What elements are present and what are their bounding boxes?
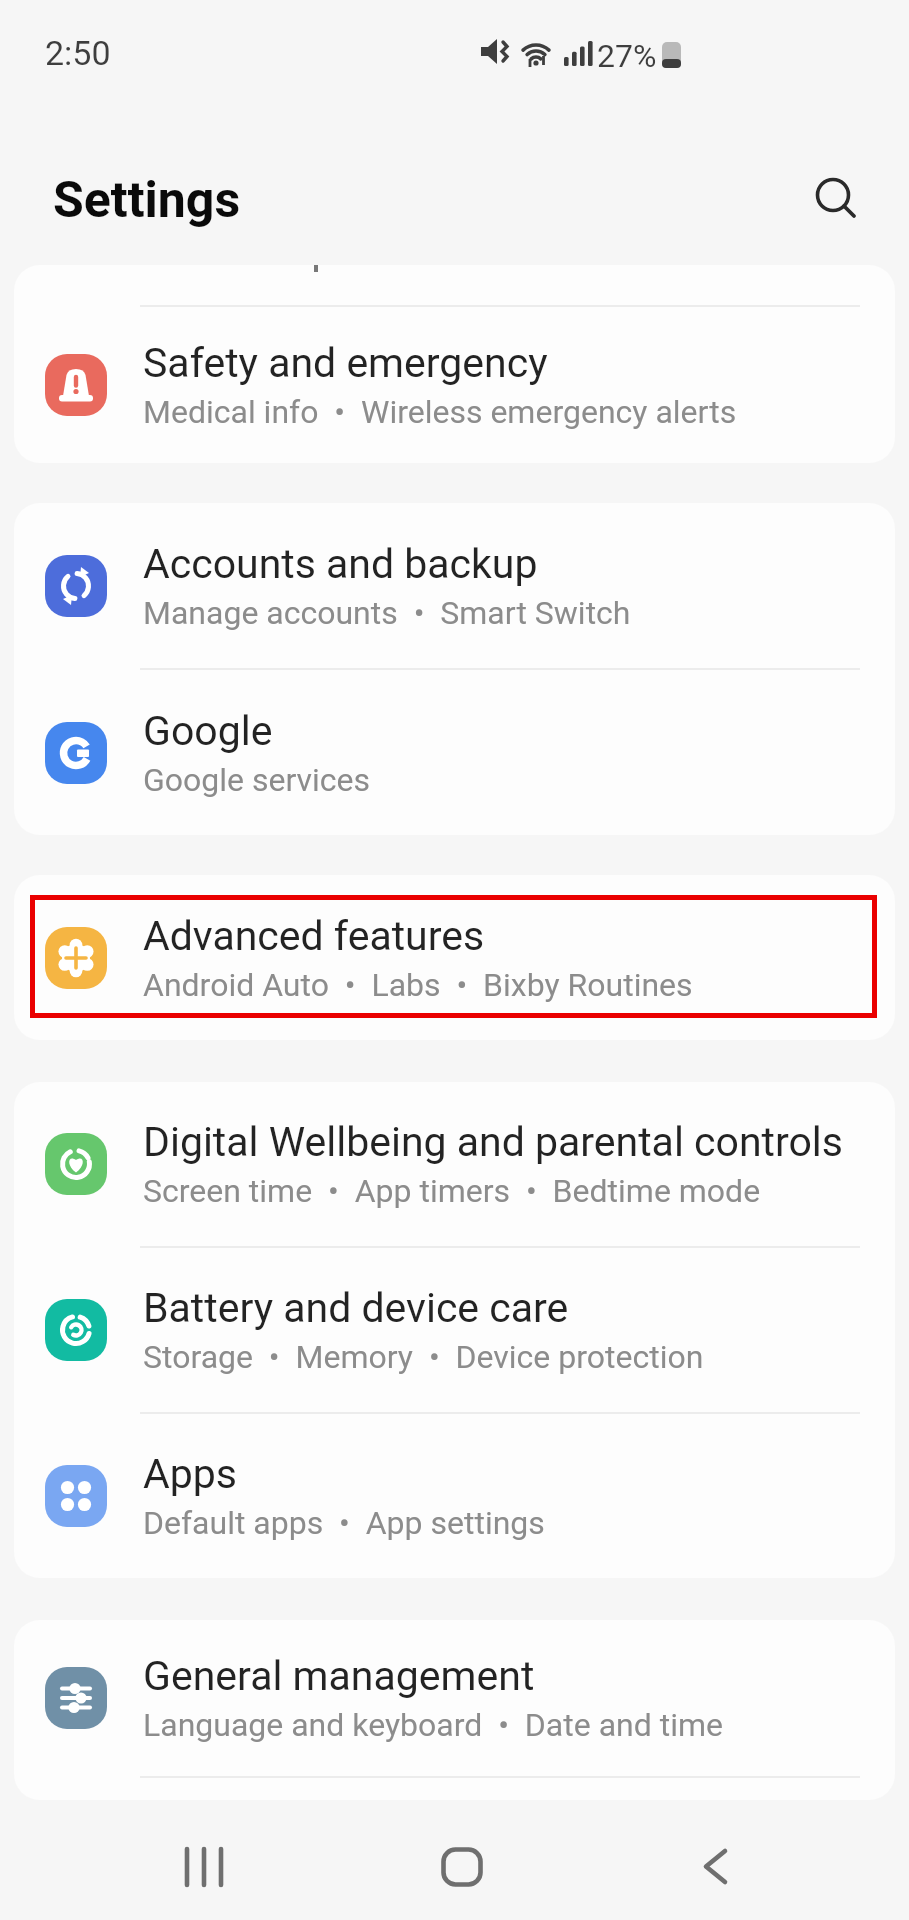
staticText: Apps bbox=[143, 1450, 237, 1498]
staticText: 2:50 bbox=[45, 33, 111, 73]
button[interactable] bbox=[699, 1849, 735, 1885]
button[interactable] bbox=[812, 174, 862, 224]
staticText: Accounts and backup bbox=[143, 540, 538, 588]
button[interactable]: Digital Wellbeing and parental controls bbox=[14, 1082, 895, 1246]
staticText: Default apps • App settings bbox=[143, 1504, 545, 1542]
staticText: Manage accounts • Smart Switch bbox=[143, 594, 631, 632]
button[interactable]: General management bbox=[14, 1620, 895, 1776]
staticText: Medical info • Wireless emergency alerts bbox=[143, 393, 737, 431]
button[interactable] bbox=[441, 1847, 483, 1887]
staticText: Google services bbox=[143, 761, 371, 799]
staticText: Advanced features bbox=[143, 912, 485, 960]
button[interactable] bbox=[184, 1847, 226, 1887]
staticText: Android Auto • Labs • Bixby Routines bbox=[143, 966, 693, 1004]
staticText: Screen time • App timers • Bedtime mode bbox=[143, 1172, 761, 1210]
staticText: 27% bbox=[597, 37, 657, 75]
button[interactable]: Accounts and backup bbox=[14, 503, 895, 668]
button[interactable]: Battery and device care bbox=[14, 1248, 895, 1412]
button[interactable]: Apps bbox=[14, 1414, 895, 1578]
button[interactable]: Advanced features bbox=[14, 875, 895, 1040]
staticText: Safety and emergency bbox=[143, 339, 548, 387]
staticText: Storage • Memory • Device protection bbox=[143, 1338, 704, 1376]
staticText: Language and keyboard • Date and time bbox=[143, 1706, 723, 1744]
staticText: Settings bbox=[53, 171, 241, 230]
staticText: General management bbox=[143, 1652, 535, 1700]
staticText: Google bbox=[143, 707, 273, 755]
staticText: Battery and device care bbox=[143, 1284, 569, 1332]
button[interactable]: Safety and emergency bbox=[14, 307, 895, 463]
staticText: Digital Wellbeing and parental controls bbox=[143, 1118, 843, 1166]
button[interactable]: Google bbox=[14, 670, 895, 835]
